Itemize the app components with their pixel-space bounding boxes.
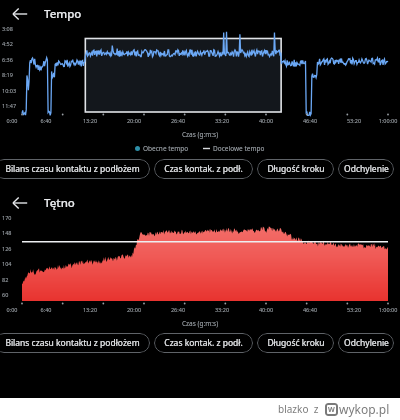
staticText: 46:40 — [288, 306, 332, 313]
staticText: 8:19 — [2, 71, 13, 78]
staticText: Tempo — [44, 6, 82, 22]
staticText: 13:20 — [68, 306, 112, 313]
staticText: 53:20 — [332, 306, 376, 313]
staticText: 1:00:00 — [376, 306, 400, 313]
staticText: 53:20 — [332, 117, 376, 124]
staticText: 10:03 — [2, 87, 17, 94]
staticText: 33:20 — [200, 117, 244, 124]
button[interactable]: Odchylenie — [338, 159, 394, 179]
staticText: Czas kontak. z podł. — [164, 337, 243, 349]
button[interactable]: Bilans czasu kontaktu z podłożem — [0, 333, 150, 353]
staticText: Docelowe tempo — [213, 144, 265, 153]
button[interactable]: Wstecz — [4, 0, 36, 28]
staticText: Długość kroku — [267, 163, 325, 175]
staticText: Długość kroku — [267, 337, 325, 349]
staticText: Tętno — [44, 195, 75, 211]
staticText: 148 — [2, 229, 12, 236]
button[interactable]: Czas kontak. z podł. — [154, 333, 253, 353]
staticText: Bilans czasu kontaktu z podłożem — [5, 163, 140, 175]
staticText: 1:00:00 — [376, 117, 400, 124]
staticText: 126 — [2, 245, 12, 252]
staticText: 33:20 — [200, 306, 244, 313]
staticText: 104 — [2, 260, 12, 267]
staticText: 20:00 — [112, 306, 156, 313]
staticText: W — [328, 405, 335, 415]
staticText: 60 — [2, 291, 9, 298]
staticText: 6:40 — [24, 306, 68, 313]
staticText: blazko z — [278, 402, 319, 416]
staticText: 40:00 — [244, 117, 288, 124]
staticText: 4:52 — [2, 40, 13, 47]
staticText: Bilans czasu kontaktu z podłożem — [5, 337, 140, 349]
button[interactable]: Bilans czasu kontaktu z podłożem — [0, 159, 150, 179]
staticText: Odchylenie — [344, 163, 389, 175]
staticText: 170 — [2, 214, 12, 221]
staticText: 40:00 — [244, 306, 288, 313]
staticText: 82 — [2, 276, 9, 283]
button[interactable]: Długość kroku — [257, 333, 334, 353]
staticText: 0:00 — [0, 306, 24, 313]
staticText: Obecne tempo — [143, 144, 189, 153]
button[interactable]: Długość kroku — [257, 159, 334, 179]
button[interactable]: Wstecz — [4, 189, 36, 217]
staticText: Czas kontak. z podł. — [164, 163, 243, 175]
staticText: 6:36 — [2, 56, 13, 63]
button[interactable]: Czas kontak. z podł. — [154, 159, 253, 179]
staticText: 0:00 — [0, 117, 24, 124]
staticText: 20:00 — [112, 117, 156, 124]
staticText: 26:40 — [156, 306, 200, 313]
staticText: 46:40 — [288, 117, 332, 124]
staticText: Odchylenie — [344, 337, 389, 349]
staticText: 11:47 — [2, 102, 17, 109]
staticText: 26:40 — [156, 117, 200, 124]
button[interactable]: Odchylenie — [338, 333, 394, 353]
staticText: Czas (g:m:s) — [0, 319, 400, 328]
staticText: 3:08 — [2, 25, 13, 32]
staticText: wykop.pl — [339, 401, 390, 417]
staticText: 13:20 — [68, 117, 112, 124]
staticText: 6:40 — [24, 117, 68, 124]
staticText: Czas (g:m:s) — [0, 130, 400, 139]
